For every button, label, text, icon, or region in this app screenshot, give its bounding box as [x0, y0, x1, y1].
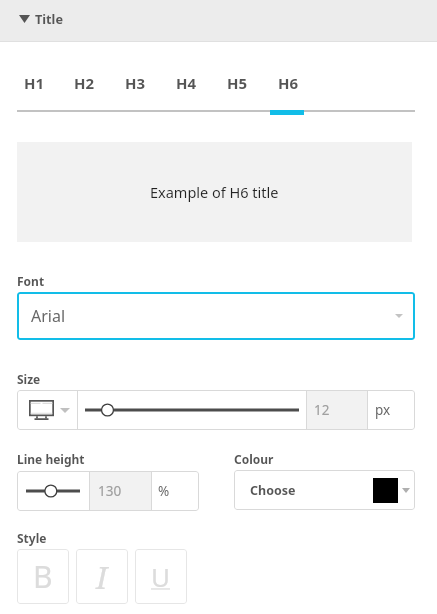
button[interactable]: B: [17, 549, 69, 604]
button[interactable]: H6: [266, 65, 310, 101]
button[interactable]: Device: desktop: [17, 390, 77, 430]
staticText: 130: [98, 482, 122, 500]
staticText: Size: [17, 371, 41, 387]
staticText: Example of H6 title: [150, 182, 279, 202]
staticText: H4: [176, 73, 197, 93]
staticText: H6: [278, 73, 299, 93]
button[interactable]: H2: [62, 65, 106, 101]
staticText: %: [158, 482, 170, 500]
staticText: Style: [17, 530, 47, 546]
button[interactable]: [78, 390, 306, 430]
button[interactable]: I: [76, 549, 128, 604]
staticText: H3: [125, 73, 146, 93]
button[interactable]: H5: [215, 65, 259, 101]
staticText: H2: [74, 73, 95, 93]
staticText: Choose: [250, 482, 296, 499]
staticText: H1: [24, 73, 45, 93]
button[interactable]: Arial: [17, 292, 415, 340]
button[interactable]: H1: [12, 65, 56, 101]
staticText: B: [33, 556, 53, 597]
staticText: H5: [227, 73, 248, 93]
staticText: Title: [35, 10, 63, 27]
button[interactable]: Title: [0, 0, 437, 42]
staticText: Arial: [31, 305, 66, 327]
staticText: I: [96, 556, 108, 598]
staticText: Line height: [17, 451, 85, 467]
staticText: Colour: [234, 451, 274, 467]
button[interactable]: 12: [307, 390, 367, 430]
button[interactable]: U: [135, 549, 187, 604]
button[interactable]: H4: [164, 65, 208, 101]
staticText: 12: [314, 401, 330, 419]
staticText: Font: [17, 273, 45, 289]
staticText: U: [151, 559, 171, 594]
button[interactable]: 130: [90, 471, 151, 511]
button[interactable]: H3: [113, 65, 157, 101]
button[interactable]: [17, 471, 89, 511]
button[interactable]: Choose: [234, 470, 415, 510]
staticText: px: [375, 401, 391, 419]
